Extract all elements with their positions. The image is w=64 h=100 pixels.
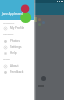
staticText: Jane Appleseed <box>2 12 23 16</box>
staticText: ACCOUNT <box>3 21 15 24</box>
button[interactable]: Add <box>41 76 46 81</box>
staticText: My Profile <box>10 26 25 30</box>
staticText: Feedback <box>10 70 24 74</box>
staticText: GENERAL <box>3 32 14 35</box>
button[interactable]: My Profile <box>0 25 34 31</box>
button[interactable]: Feedback <box>0 69 34 75</box>
button[interactable]: Help <box>0 50 34 56</box>
staticText: MORE <box>3 57 10 60</box>
staticText: About <box>10 64 19 68</box>
button[interactable]: Photos <box>0 38 34 44</box>
button[interactable]: Settings <box>0 44 34 50</box>
staticText: Photos <box>10 39 20 43</box>
button[interactable]: About <box>0 63 34 69</box>
staticText: Settings <box>10 45 22 49</box>
staticText: Help <box>10 51 17 55</box>
